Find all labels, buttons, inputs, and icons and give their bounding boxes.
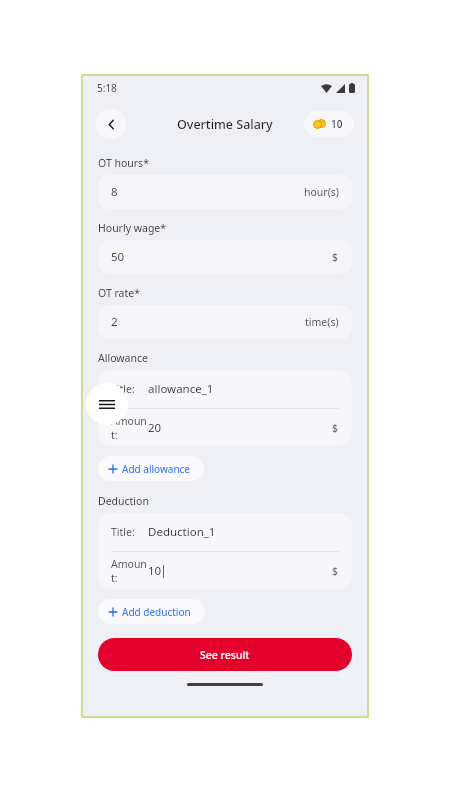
staticText: OT rate*	[98, 286, 140, 300]
staticText: Allowance	[98, 351, 148, 365]
staticText: Overtime Salary	[177, 116, 273, 133]
button[interactable]: Reorder allowance	[86, 383, 128, 425]
staticText: time(s)	[305, 315, 339, 329]
button[interactable]: Title:	[98, 513, 352, 551]
button[interactable]: Add deduction	[98, 599, 205, 624]
staticText: Amount:	[111, 557, 148, 585]
button[interactable]: Amount:	[98, 552, 352, 589]
staticText: allowance_1	[148, 381, 214, 397]
button[interactable]: 8	[98, 175, 352, 209]
staticText: 8	[111, 184, 118, 200]
staticText: 5:18	[97, 81, 117, 95]
staticText: Amount:	[111, 414, 148, 442]
button[interactable]: See result	[98, 638, 352, 671]
staticText: 50	[111, 249, 125, 265]
staticText: Add allowance	[122, 462, 190, 476]
button[interactable]: Amount:	[98, 409, 352, 446]
staticText: Add deduction	[122, 605, 191, 619]
button[interactable]: 50	[98, 240, 352, 274]
staticText: Title:	[111, 382, 135, 396]
staticText: Hourly wage*	[98, 221, 167, 235]
staticText: 10	[148, 563, 162, 579]
staticText: Title:	[111, 525, 135, 539]
button[interactable]: 2	[98, 305, 352, 339]
staticText: hour(s)	[304, 185, 339, 199]
button[interactable]: 10	[304, 111, 354, 137]
staticText: 20	[148, 420, 162, 436]
staticText: See result	[200, 648, 250, 662]
staticText: $	[332, 250, 339, 264]
button[interactable]: Back	[96, 109, 126, 139]
staticText: Deduction_1	[148, 524, 216, 540]
staticText: 10	[331, 117, 343, 131]
staticText: $	[332, 421, 339, 435]
staticText: OT hours*	[98, 156, 149, 170]
staticText: Deduction	[98, 494, 149, 508]
staticText: 2	[111, 314, 118, 330]
staticText: $	[332, 564, 339, 578]
button[interactable]: Title:	[98, 370, 352, 408]
button[interactable]: Add allowance	[98, 456, 204, 481]
